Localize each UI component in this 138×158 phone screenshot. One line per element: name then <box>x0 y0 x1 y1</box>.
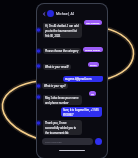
button[interactable]: Single Player <box>83 47 103 52</box>
button[interactable]: Sure, it is Eugene Kim, +1 555 8903867 <box>61 107 102 117</box>
staticText: Hi, I'm AI chatbot. I can add you to the… <box>45 24 80 37</box>
button[interactable]: Get Started <box>84 20 102 25</box>
staticText: Type message <box>45 140 62 143</box>
staticText: What is your age? <box>44 84 66 88</box>
button[interactable]: Please choose the category <box>43 48 81 54</box>
button[interactable]: What is your age? <box>42 83 68 89</box>
staticText: eugene.k@gmail.com <box>65 77 92 81</box>
button[interactable]: Hi, I'm AI chatbot. I can add you to the… <box>43 23 82 38</box>
button[interactable]: What is your email? <box>43 64 71 70</box>
staticText: May I also know your name and phone numb… <box>45 96 80 104</box>
button[interactable]: Send <box>95 138 102 145</box>
button[interactable]: May I also know your name and phone numb… <box>43 95 82 105</box>
button[interactable]: Type message <box>42 138 93 145</box>
button[interactable]: eugene.k@gmail.com <box>63 76 103 82</box>
staticText: Please choose the category <box>45 49 79 53</box>
button[interactable]: 26 <box>89 91 96 96</box>
staticText: Thank you, I have successfully added you… <box>45 121 80 134</box>
staticText: Get Started <box>86 21 100 24</box>
button[interactable]: Back <box>41 11 46 16</box>
staticText: Email <box>90 63 97 66</box>
staticText: Michael, AI <box>56 11 74 16</box>
staticText: Single Player <box>85 48 101 51</box>
staticText: Sure, it is Eugene Kim, +1 555 8903867 <box>63 108 100 116</box>
button[interactable]: Thank you, I have successfully added you… <box>43 120 82 135</box>
staticText: What is your email? <box>45 65 69 69</box>
button[interactable]: Email <box>88 62 99 67</box>
staticText: 26 <box>91 92 94 95</box>
